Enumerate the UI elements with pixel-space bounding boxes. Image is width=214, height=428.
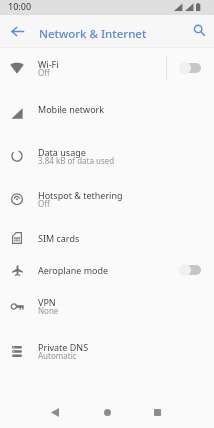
- staticText: Network & Internet: [39, 26, 147, 42]
- button[interactable]: Back: [43, 400, 67, 424]
- button[interactable]: Search: [187, 18, 211, 42]
- staticText: Data usage: [38, 146, 86, 158]
- button[interactable]: [0, 140, 214, 172]
- button[interactable]: [0, 335, 214, 367]
- staticText: Off: [38, 198, 50, 209]
- staticText: SIM cards: [38, 232, 80, 244]
- button[interactable]: Recents: [145, 400, 169, 424]
- staticText: Automatic: [38, 350, 77, 361]
- staticText: Aeroplane mode: [38, 264, 109, 276]
- button[interactable]: [0, 183, 214, 215]
- button[interactable]: [0, 290, 214, 322]
- staticText: Private DNS: [38, 341, 89, 353]
- button[interactable]: Wi-Fi toggle: [172, 52, 208, 84]
- staticText: 3.84 kB of data used: [38, 155, 115, 166]
- button[interactable]: [0, 258, 214, 282]
- button[interactable]: [0, 226, 214, 250]
- staticText: 10:00: [8, 0, 32, 12]
- staticText: VPN: [38, 296, 56, 308]
- button[interactable]: [0, 97, 214, 121]
- staticText: Hotspot & tethering: [38, 189, 123, 201]
- button[interactable]: Home: [95, 400, 119, 424]
- staticText: Off: [38, 67, 50, 78]
- button[interactable]: Back: [5, 19, 29, 43]
- staticText: Mobile network: [38, 103, 105, 115]
- button[interactable]: Aeroplane mode toggle: [172, 258, 208, 282]
- button[interactable]: [0, 52, 214, 84]
- staticText: None: [38, 305, 59, 316]
- staticText: Wi-Fi: [38, 58, 59, 70]
